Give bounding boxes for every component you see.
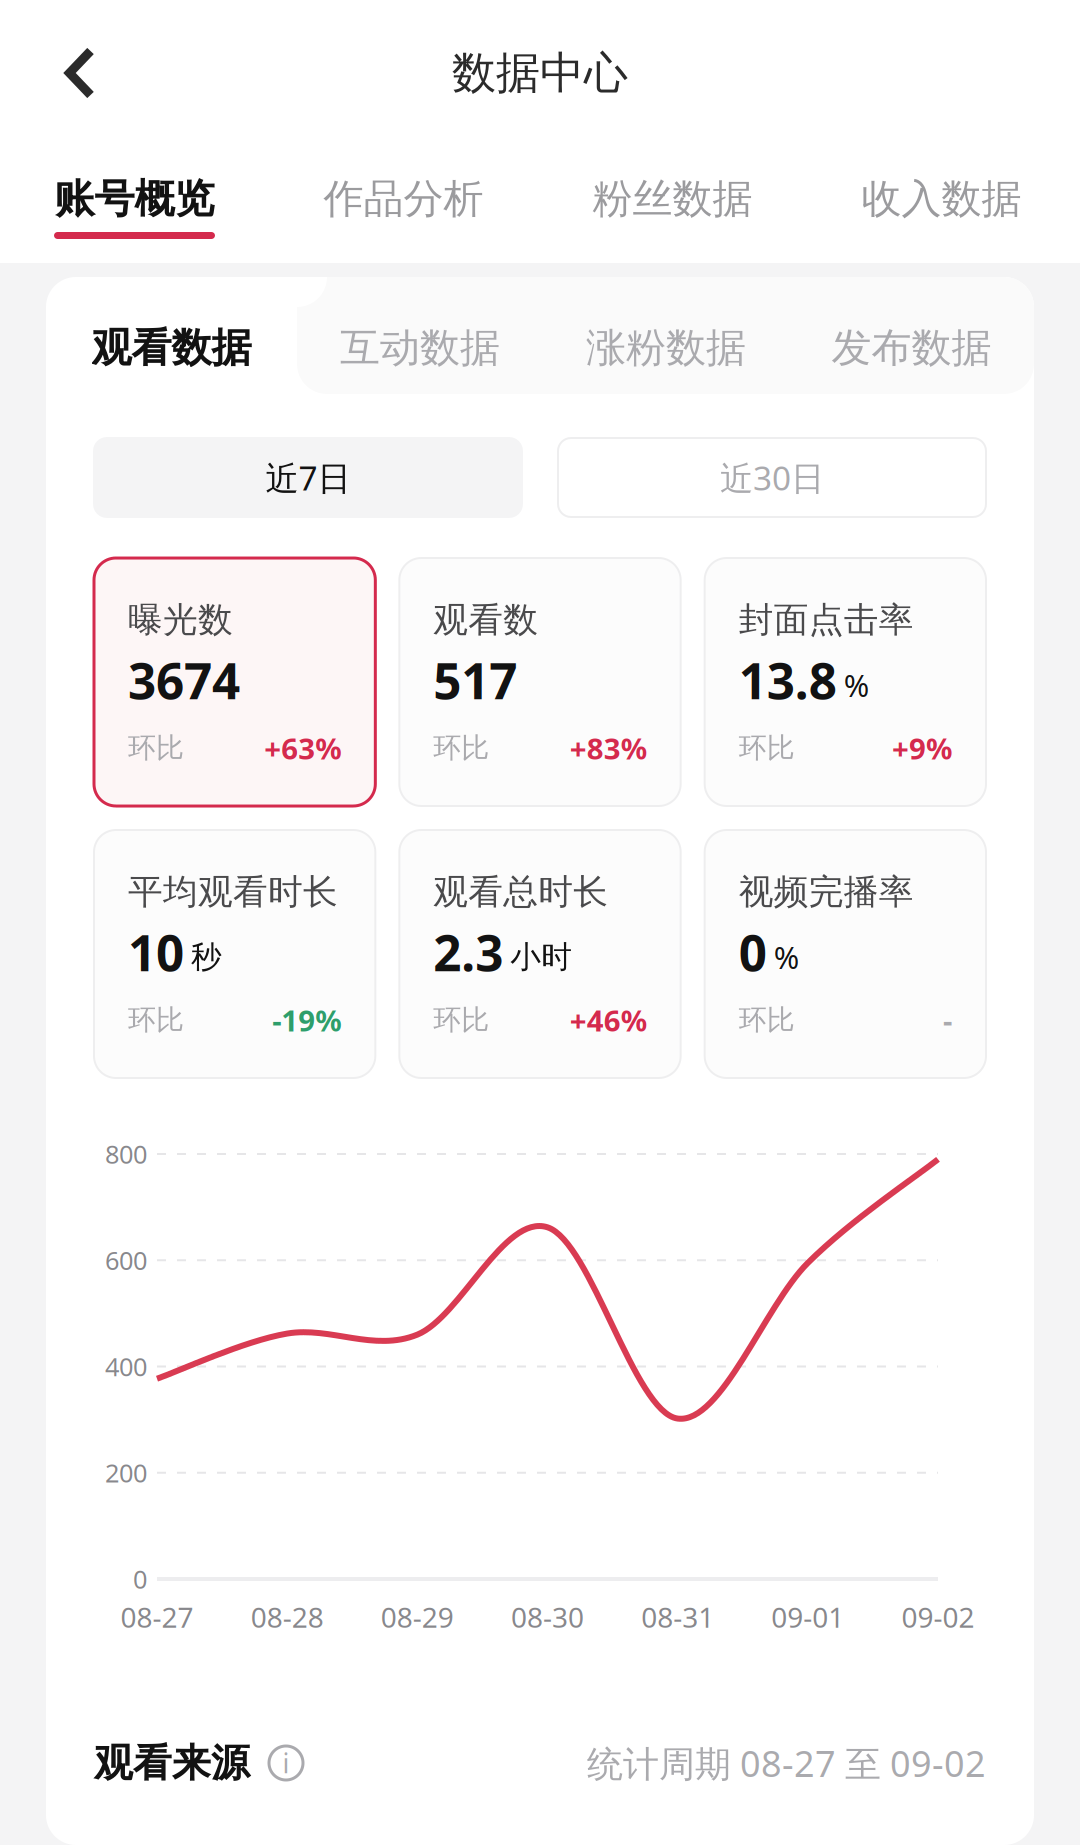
button[interactable]: 作品分析 [323,146,484,259]
staticText: -19% [272,1000,341,1039]
staticText: 观看总时长 [433,871,608,913]
staticText: 观看数据 [91,323,251,372]
staticText: 观看数 [433,599,538,641]
staticText: +63% [264,728,341,767]
staticText: 粉丝数据 [592,174,752,223]
staticText: 环比 [739,1003,795,1037]
button[interactable]: 曝光数 [94,558,375,806]
button[interactable]: 视频完播率 [705,830,986,1078]
button[interactable]: 涨粉数据 [543,277,789,394]
button[interactable]: 观看总时长 [399,830,681,1078]
staticText: i [282,1745,289,1781]
staticText: 小时 [510,938,572,976]
staticText: 封面点击率 [739,599,914,641]
staticText: 数据中心 [452,46,628,100]
staticText: 发布数据 [831,323,991,372]
button[interactable]: 观看数据 [46,277,297,394]
staticText: 涨粉数据 [586,323,746,372]
staticText: 200 [105,1456,147,1489]
staticText: 10 [128,919,184,985]
staticText: 环比 [128,731,184,765]
staticText: - [943,1000,952,1039]
staticText: 收入数据 [861,174,1021,223]
staticText: 08-30 [511,1598,584,1636]
staticText: 近30日 [720,455,824,500]
staticText: +9% [892,728,952,767]
staticText: 环比 [128,1003,184,1037]
staticText: 环比 [739,731,795,765]
staticText: 互动数据 [340,323,500,372]
staticText: 2.3 [433,919,503,985]
staticText: 秒 [191,938,222,976]
staticText: 视频完播率 [739,871,914,913]
staticText: 517 [433,647,517,713]
staticText: 800 [105,1137,147,1171]
staticText: 环比 [433,1003,489,1037]
button[interactable]: 近30日 [558,438,986,517]
staticText: 统计周期 08-27 至 09-02 [587,1739,986,1787]
button[interactable]: 返回 [25,23,135,123]
button[interactable]: 近7日 [94,438,522,517]
staticText: +46% [570,1000,647,1039]
button[interactable]: 收入数据 [861,146,1022,259]
staticText: 600 [105,1243,147,1277]
staticText: 09-01 [771,1598,844,1636]
staticText: 平均观看时长 [128,871,338,913]
button[interactable]: 观看数 [399,558,681,806]
staticText: 0 [133,1562,147,1596]
staticText: % [844,665,869,705]
staticText: 近7日 [265,455,350,500]
staticText: 账号概览 [54,174,214,223]
button[interactable]: 账号概览 [54,146,215,259]
staticText: +83% [570,728,647,767]
staticText: 08-28 [251,1598,324,1636]
staticText: 作品分析 [323,174,483,223]
staticText: 环比 [433,731,489,765]
staticText: 08-27 [120,1598,193,1636]
staticText: % [774,937,799,977]
staticText: 3674 [128,647,240,713]
staticText: 08-31 [641,1598,714,1636]
staticText: 0 [739,919,767,985]
button[interactable]: 平均观看时长 [94,830,375,1078]
button[interactable]: 封面点击率 [705,558,986,806]
button[interactable]: 互动数据 [297,277,543,394]
staticText: 曝光数 [128,599,233,641]
staticText: 09-02 [901,1598,974,1636]
staticText: 08-29 [381,1598,454,1636]
staticText: 400 [105,1350,147,1383]
staticText: 13.8 [739,647,837,713]
button[interactable]: 粉丝数据 [592,146,753,259]
staticText: 观看来源 [94,1739,250,1787]
button[interactable]: 发布数据 [789,277,1034,394]
